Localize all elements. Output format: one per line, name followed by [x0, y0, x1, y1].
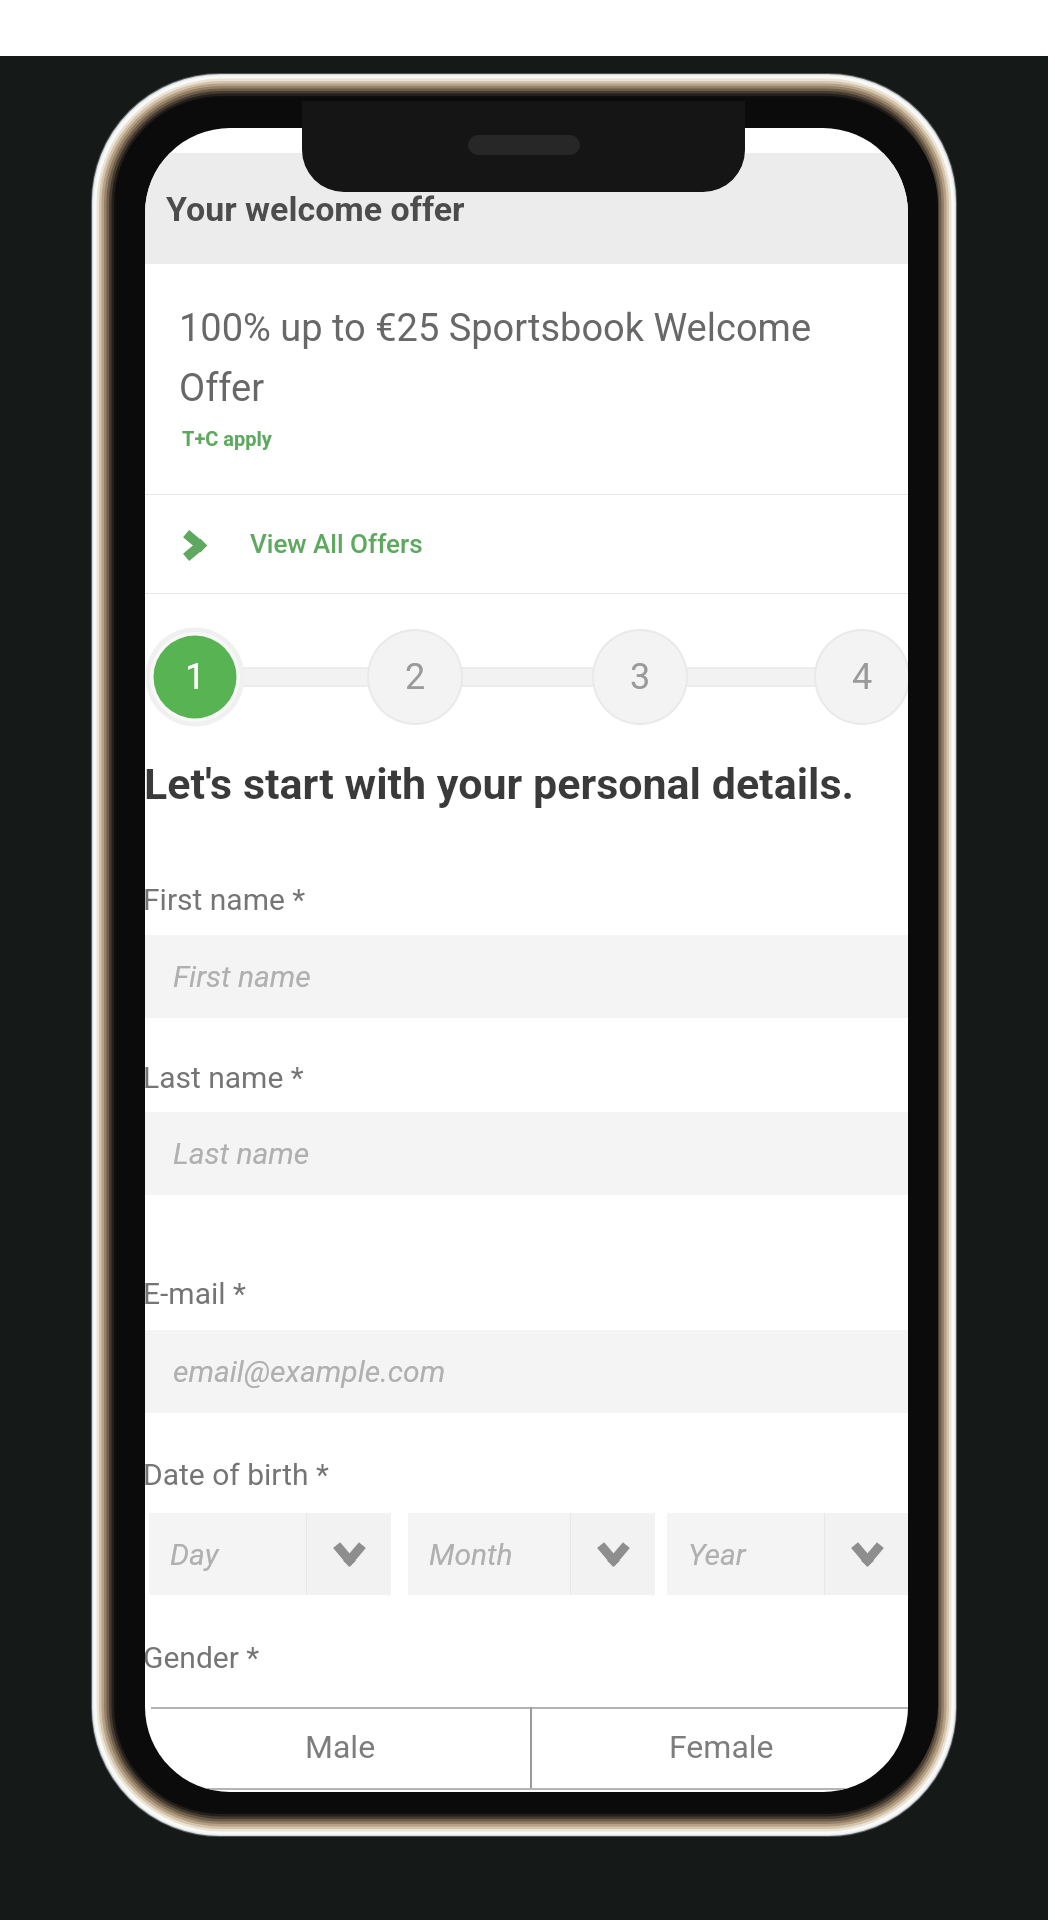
- staticText: 1: [185, 656, 206, 698]
- staticText: First name *: [145, 882, 306, 917]
- staticText: Date of birth *: [145, 1457, 329, 1492]
- staticText: Male: [305, 1728, 376, 1766]
- button[interactable]: Your welcome offer: [145, 153, 908, 264]
- staticText: Let's start with your personal details.: [145, 759, 854, 809]
- button[interactable]: First name: [145, 935, 908, 1018]
- staticText: 4: [852, 656, 873, 698]
- button[interactable]: Day: [149, 1513, 391, 1595]
- staticText: Your welcome offer: [166, 189, 465, 229]
- staticText: E-mail *: [145, 1276, 246, 1311]
- other: Open Day selector: [307, 1513, 391, 1595]
- other: Open Month selector: [571, 1513, 655, 1595]
- button[interactable]: View All Offers: [145, 495, 908, 593]
- button[interactable]: Female: [532, 1707, 908, 1790]
- button[interactable]: Last name: [145, 1112, 908, 1195]
- button[interactable]: 1: [145, 627, 245, 727]
- staticText: Last name: [173, 1136, 310, 1171]
- staticText: Gender *: [145, 1640, 260, 1675]
- staticText: First name: [173, 959, 311, 994]
- staticText: 100% up to €25 Sportsbook Welcome Offer: [179, 306, 879, 410]
- button[interactable]: Male: [151, 1707, 530, 1790]
- staticText: T+C apply: [182, 427, 272, 450]
- staticText: Last name *: [145, 1060, 304, 1095]
- button[interactable]: Year: [667, 1513, 908, 1595]
- staticText: Year: [688, 1537, 746, 1572]
- button[interactable]: Month: [408, 1513, 655, 1595]
- button[interactable]: email@example.com: [145, 1330, 908, 1413]
- button[interactable]: 2: [365, 627, 465, 727]
- staticText: 2: [405, 656, 426, 698]
- staticText: email@example.com: [173, 1354, 446, 1389]
- button[interactable]: 3: [590, 627, 690, 727]
- other: Open Year selector: [825, 1513, 908, 1595]
- staticText: Day: [170, 1537, 219, 1572]
- button[interactable]: 4: [812, 627, 908, 727]
- staticText: View All Offers: [250, 529, 423, 559]
- staticText: Female: [669, 1728, 774, 1766]
- staticText: 3: [630, 656, 651, 698]
- staticText: Month: [429, 1537, 513, 1572]
